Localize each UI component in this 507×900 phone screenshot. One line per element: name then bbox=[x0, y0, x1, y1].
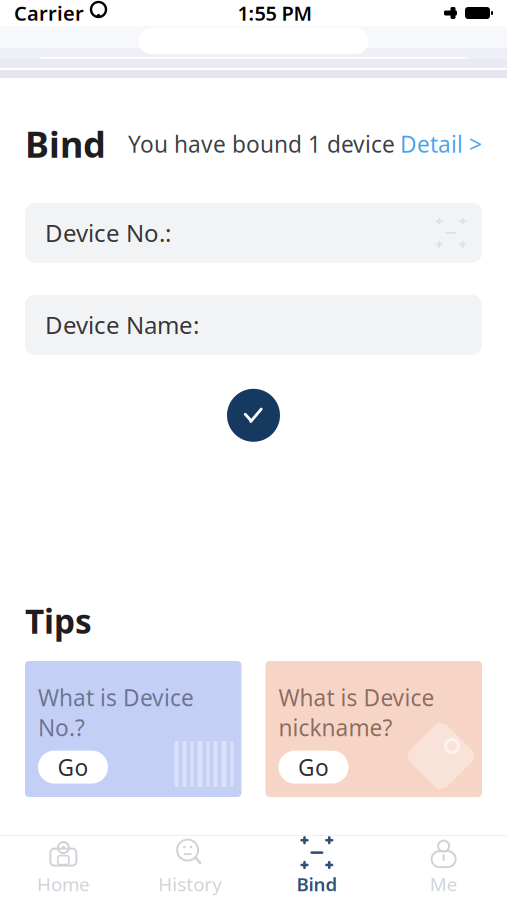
staticText: Device Name: bbox=[45, 309, 199, 341]
button[interactable]: History bbox=[127, 836, 254, 900]
button[interactable]: What is Device No.? bbox=[25, 661, 241, 797]
staticText: Bind bbox=[296, 872, 337, 896]
button[interactable]: Device No.: bbox=[25, 203, 482, 263]
staticText: History bbox=[158, 872, 222, 896]
staticText: You have bound 1 device bbox=[128, 129, 395, 159]
button[interactable]: What is Device nickname? bbox=[265, 661, 482, 797]
staticText: What is Device nickname? bbox=[278, 682, 434, 743]
staticText: Tips bbox=[25, 599, 92, 643]
staticText: Go bbox=[57, 752, 88, 782]
staticText: Me bbox=[430, 872, 458, 896]
button[interactable]: Bind bbox=[253, 836, 380, 900]
button[interactable]: Device Name: bbox=[25, 295, 482, 355]
staticText: Carrier bbox=[14, 0, 84, 26]
staticText: 1:55 PM bbox=[237, 0, 312, 26]
staticText: Home bbox=[37, 872, 90, 896]
staticText: Detail > bbox=[400, 129, 482, 159]
button[interactable]: Home bbox=[0, 836, 127, 900]
staticText: What is Device No.? bbox=[38, 682, 194, 743]
button[interactable]: Me bbox=[380, 836, 507, 900]
button[interactable]: Confirm bbox=[227, 389, 280, 442]
staticText: Device No.: bbox=[45, 217, 171, 249]
staticText: Bind bbox=[25, 120, 106, 168]
button[interactable]: Detail > bbox=[400, 129, 482, 159]
staticText: Go bbox=[298, 752, 329, 782]
